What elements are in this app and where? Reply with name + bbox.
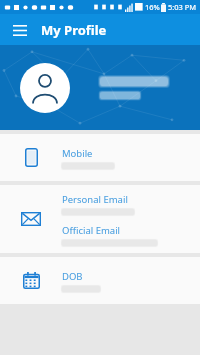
staticText: 5:03 PM [168, 2, 197, 12]
staticText: Personal Email [62, 193, 128, 206]
staticText: My Profile [41, 21, 107, 39]
button[interactable]: DOB [0, 257, 200, 304]
staticText: Mobile [62, 147, 93, 160]
button[interactable]: Mobile [0, 134, 200, 181]
button[interactable]: Open navigation menu [8, 18, 32, 42]
button[interactable]: Personal Email [0, 185, 200, 253]
staticText: 16% [145, 2, 160, 12]
staticText: DOB [62, 270, 83, 283]
staticText: Official Email [62, 224, 121, 237]
